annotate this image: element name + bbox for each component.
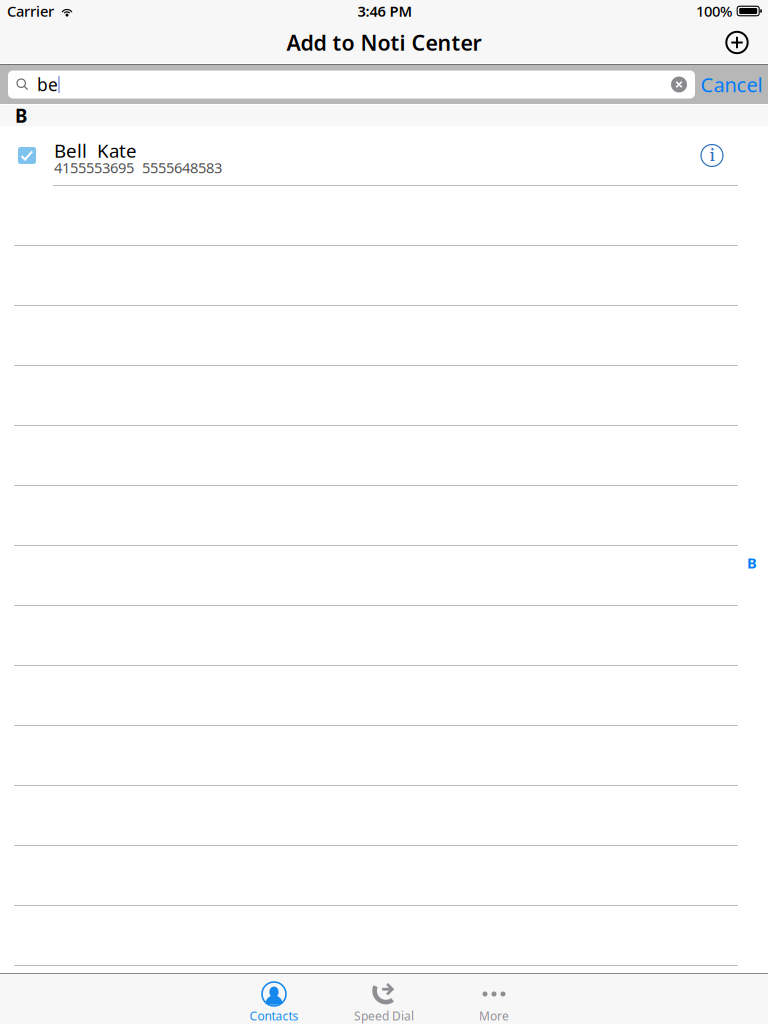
staticText: More — [479, 1008, 509, 1024]
staticText: B — [15, 103, 27, 128]
staticText: Contacts — [249, 1008, 298, 1024]
staticText: Bell Kate — [54, 138, 137, 163]
staticText: 4155553695 5555648583 — [54, 158, 222, 177]
staticText: Carrier — [7, 1, 54, 21]
staticText: Cancel — [700, 71, 762, 98]
button[interactable]: Bell Kate — [0, 126, 768, 186]
button[interactable]: More — [439, 974, 549, 1024]
staticText: Speed Dial — [354, 1008, 414, 1024]
button[interactable]: Contacts — [219, 974, 329, 1024]
button[interactable]: Clear search — [671, 76, 695, 92]
button[interactable]: Add — [725, 30, 768, 54]
staticText: be — [37, 73, 58, 96]
staticText: 100% — [696, 1, 732, 21]
staticText: 3:46 PM — [357, 1, 412, 21]
staticText: Add to Noti Center — [286, 28, 481, 57]
staticText: i — [709, 144, 714, 167]
staticText: B — [747, 553, 757, 572]
button[interactable]: Speed Dial — [329, 974, 439, 1024]
button[interactable]: Cancel — [695, 65, 768, 104]
